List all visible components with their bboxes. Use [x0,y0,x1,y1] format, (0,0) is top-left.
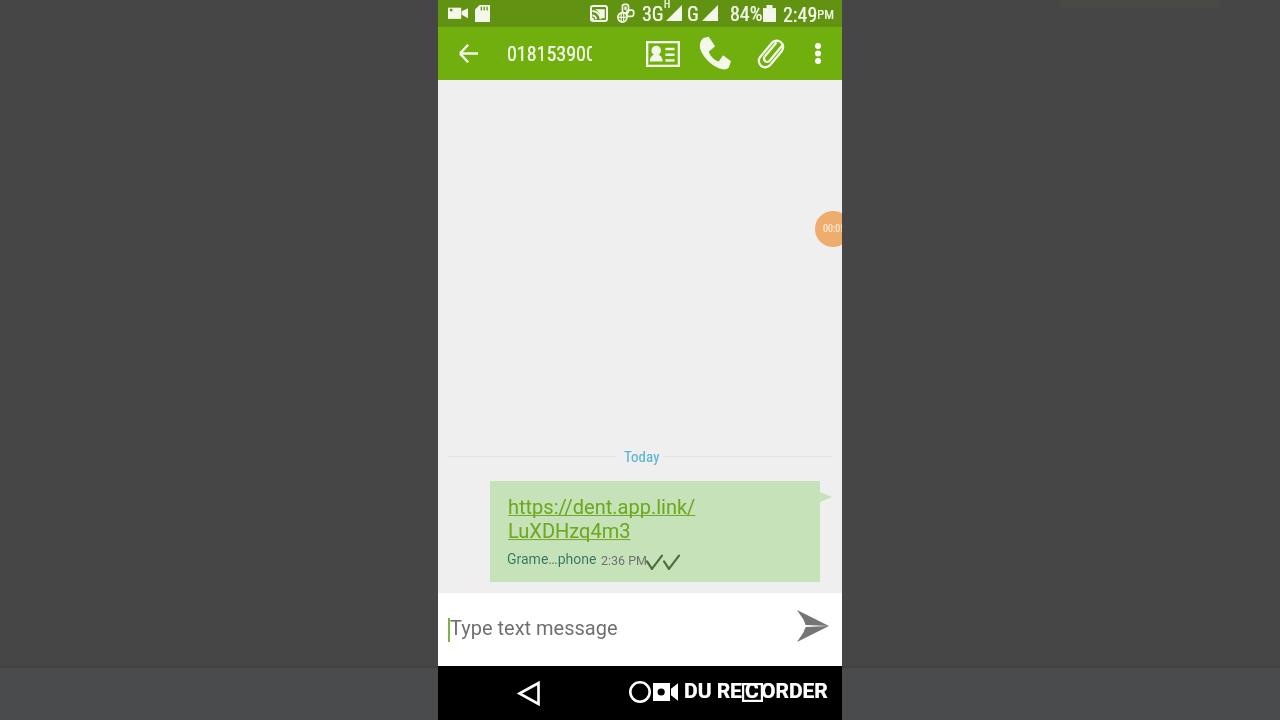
button[interactable]: Back [444,27,492,80]
staticText: 00:05 [823,223,842,235]
button[interactable]: Recording timer [815,211,842,247]
button[interactable]: Back [503,666,555,720]
button[interactable]: More options [796,27,840,80]
staticText: Type text message [450,616,618,639]
staticText: 2:36 PM [601,553,648,568]
staticText: DU RE [684,679,742,704]
staticText: https://dent.app.link/ LuXDHzq4m3 [508,495,696,543]
staticText: H [664,0,671,11]
staticText: Today [624,448,660,466]
button[interactable]: 0181539003 [507,27,592,80]
button[interactable]: Type text message [442,607,772,653]
staticText: 84% [730,2,763,25]
staticText: G [687,2,699,25]
staticText: 3G [642,2,664,25]
button[interactable]: Attach [746,27,796,80]
staticText: PM [817,7,835,22]
button[interactable]: https://dent.app.link/ LuXDHzq4m3 [490,481,820,582]
staticText: 2:49 [783,3,818,26]
staticText: ORDER [761,679,828,704]
button[interactable]: Send [791,605,835,646]
staticText: Grame…phone [507,551,597,567]
button[interactable]: Contact details [638,27,688,80]
staticText: C [745,679,759,704]
button[interactable]: Call [688,27,738,80]
staticText: 0181539003 [507,42,592,65]
